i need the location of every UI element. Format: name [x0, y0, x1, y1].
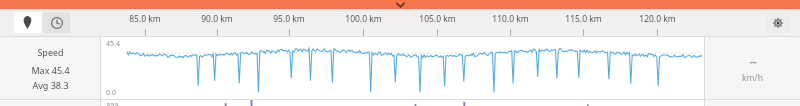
staticText: Avg 38.3: [32, 79, 69, 91]
staticText: 85.0 km: [129, 13, 161, 25]
button[interactable]: Settings: [766, 12, 790, 33]
staticText: 100.0 km: [345, 13, 382, 25]
staticText: 95.0 km: [273, 13, 305, 25]
staticText: 105.0 km: [419, 13, 456, 25]
button[interactable]: Time: [43, 12, 70, 33]
staticText: 45.4: [106, 39, 120, 49]
button[interactable]: Speed: [0, 37, 100, 99]
staticText: 859: [106, 101, 119, 106]
staticText: km/h: [742, 72, 763, 84]
staticText: 115.0 km: [565, 13, 602, 25]
staticText: Max 45.4: [31, 64, 70, 76]
staticText: Speed: [37, 46, 64, 58]
staticText: 90.0 km: [201, 13, 233, 25]
staticText: 0.0: [106, 88, 116, 98]
staticText: 110.0 km: [492, 13, 529, 25]
button[interactable]: Collapse panel: [0, 0, 800, 9]
staticText: 120.0 km: [639, 13, 676, 25]
staticText: --: [749, 53, 757, 68]
button[interactable]: Map location: [14, 12, 41, 33]
